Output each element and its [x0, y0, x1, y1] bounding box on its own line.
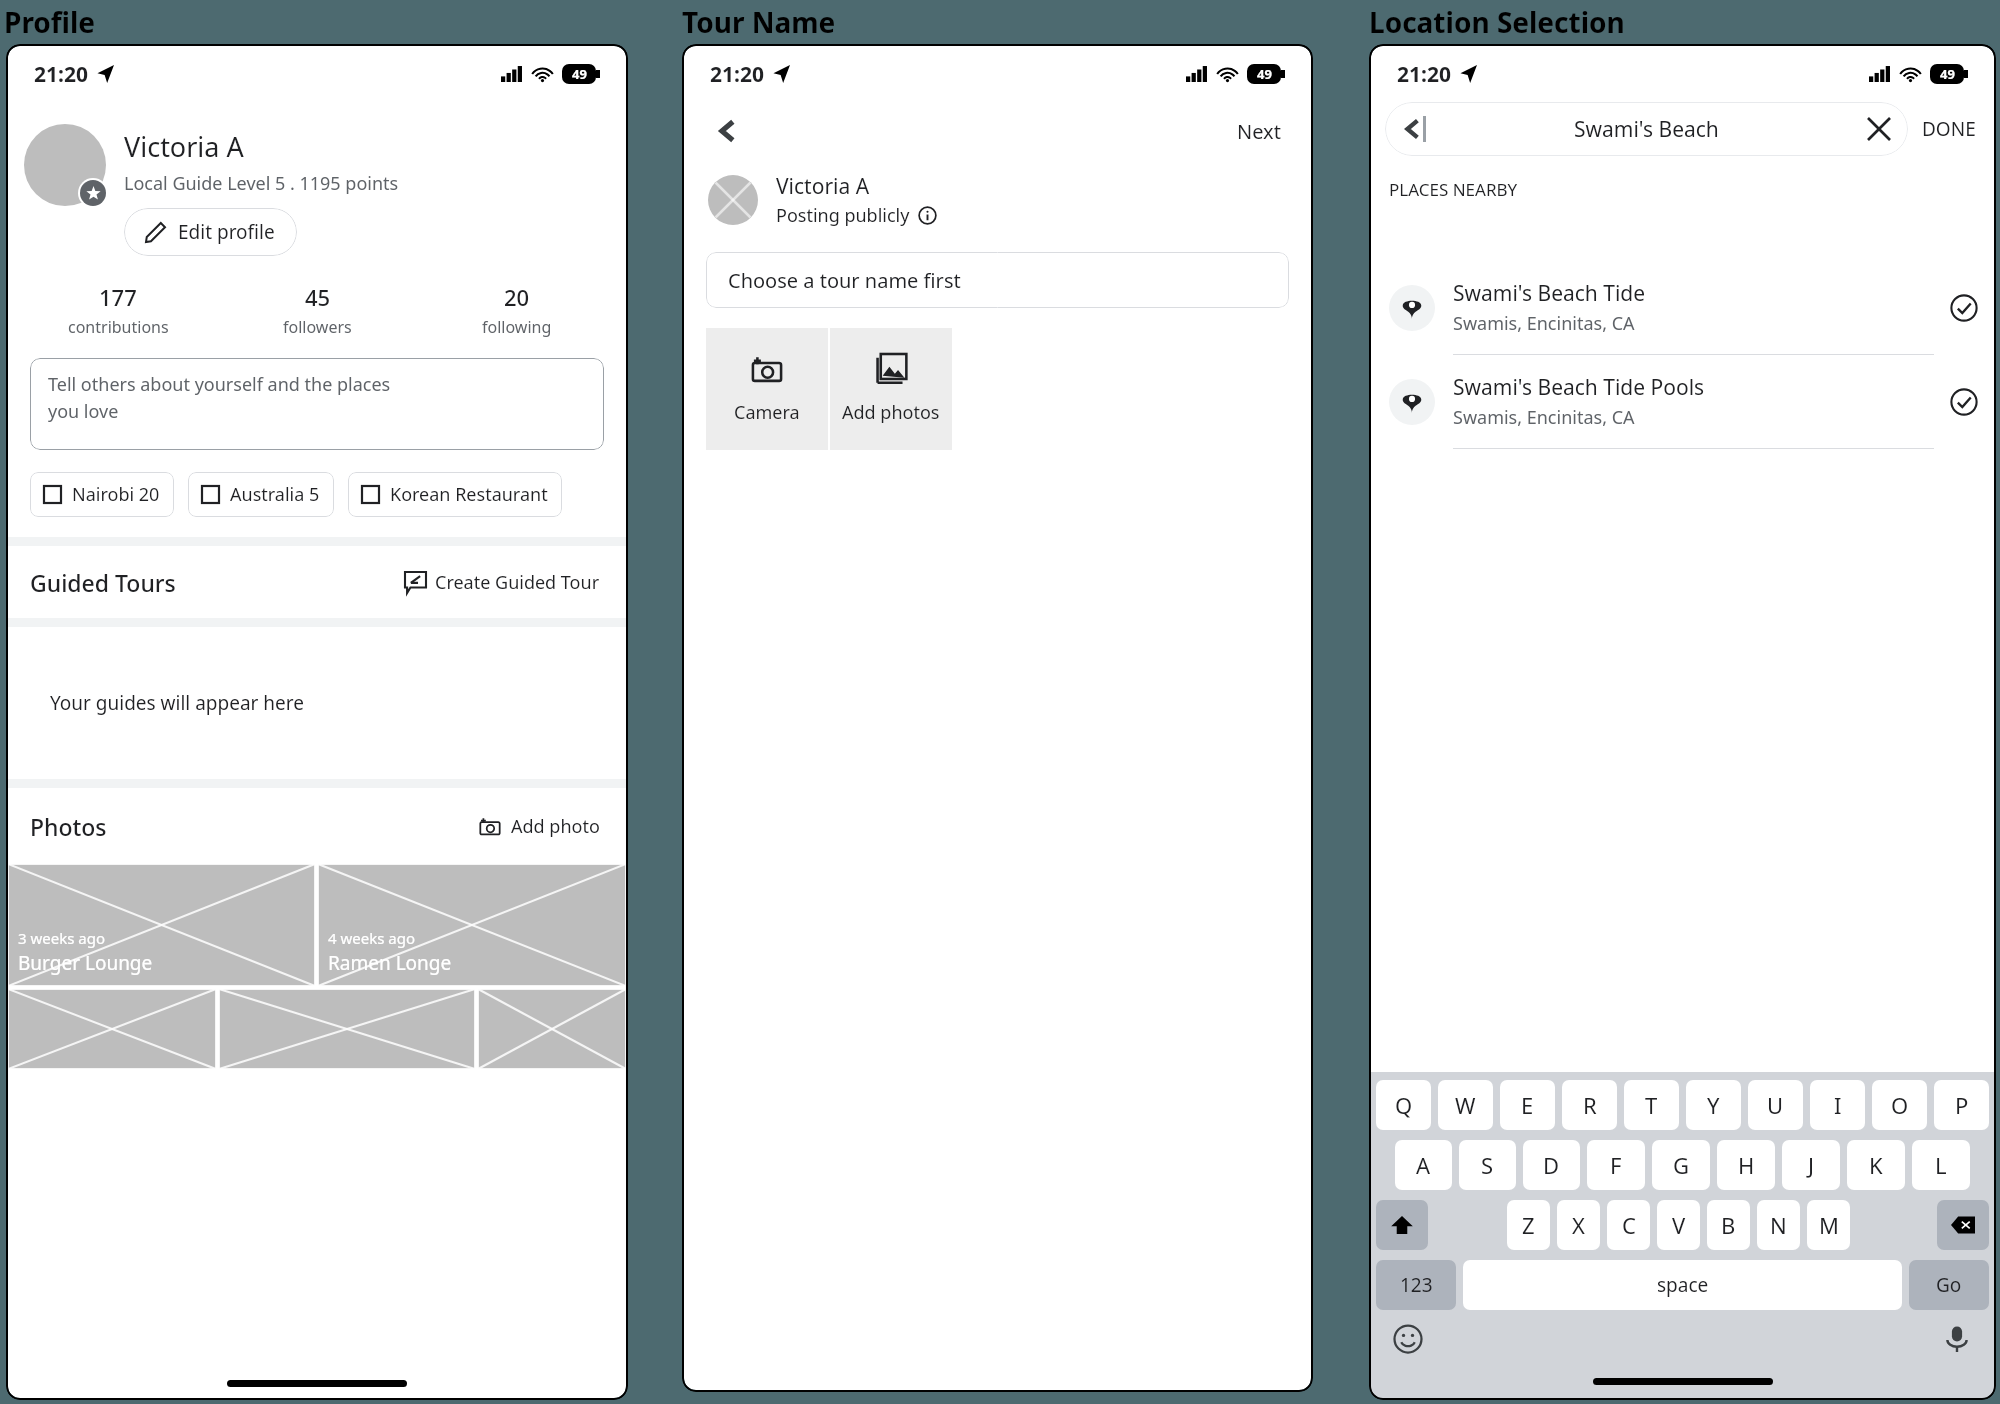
- staticText: 49: [1940, 65, 1955, 83]
- button[interactable]: Swami's Beach Tide Pools: [1371, 355, 1994, 449]
- staticText: Ramen Longe: [328, 950, 452, 976]
- button[interactable]: P: [1934, 1080, 1989, 1130]
- button[interactable]: Select Swami's Beach Tide Pools: [1934, 372, 1994, 432]
- staticText: Add photos: [842, 400, 940, 425]
- button[interactable]: Clear: [1868, 118, 1890, 140]
- staticText: 49: [572, 65, 587, 83]
- staticText: Q: [1395, 1090, 1413, 1120]
- button[interactable]: C: [1607, 1200, 1650, 1250]
- staticText: E: [1521, 1090, 1534, 1120]
- staticText: Z: [1522, 1210, 1535, 1240]
- button[interactable]: M: [1807, 1200, 1850, 1250]
- button[interactable]: Back: [708, 111, 748, 151]
- button[interactable]: Add photo: [475, 810, 604, 843]
- button[interactable]: A: [1395, 1140, 1452, 1190]
- button[interactable]: Korean Restaurant: [348, 472, 562, 517]
- button[interactable]: J: [1782, 1140, 1840, 1190]
- button[interactable]: Dictate: [1942, 1324, 1972, 1354]
- button[interactable]: B: [1707, 1200, 1750, 1250]
- button[interactable]: X: [1557, 1200, 1600, 1250]
- button[interactable]: W: [1438, 1080, 1493, 1130]
- button[interactable]: Back: [1385, 102, 1908, 156]
- staticText: Your guides will appear here: [50, 690, 305, 716]
- staticText: Next: [1237, 118, 1281, 145]
- button[interactable]: DONE: [1918, 112, 1980, 146]
- button[interactable]: Swami's Beach Tide: [1371, 261, 1994, 355]
- staticText: S: [1481, 1150, 1494, 1180]
- button[interactable]: Choose a tour name first: [706, 252, 1289, 308]
- staticText: Camera: [734, 400, 800, 425]
- button[interactable]: Add photos: [830, 328, 952, 450]
- button[interactable]: G: [1652, 1140, 1710, 1190]
- staticText: Swamis, Encinitas, CA: [1453, 405, 1635, 430]
- button[interactable]: Next: [1231, 112, 1287, 151]
- button[interactable]: Shift: [1376, 1200, 1428, 1250]
- button[interactable]: space: [1463, 1260, 1902, 1310]
- button[interactable]: 4 weeks ago: [318, 864, 626, 986]
- button[interactable]: K: [1847, 1140, 1905, 1190]
- staticText: Local Guide Level 5 . 1195 points: [124, 171, 399, 196]
- button[interactable]: S: [1459, 1140, 1516, 1190]
- staticText: I: [1834, 1090, 1842, 1120]
- other: Back: [1403, 119, 1423, 139]
- staticText: O: [1891, 1090, 1909, 1120]
- button[interactable]: F: [1587, 1140, 1645, 1190]
- button[interactable]: U: [1748, 1080, 1803, 1130]
- button[interactable]: [8, 989, 216, 1069]
- staticText: PLACES NEARBY: [1389, 178, 1518, 201]
- button[interactable]: 45: [218, 282, 417, 338]
- staticText: Victoria A: [124, 128, 244, 165]
- button[interactable]: I: [1810, 1080, 1865, 1130]
- button[interactable]: D: [1523, 1140, 1580, 1190]
- button[interactable]: 123: [1376, 1260, 1456, 1310]
- staticText: following: [482, 316, 552, 338]
- button[interactable]: Edit profile: [124, 208, 297, 256]
- staticText: Victoria A: [776, 172, 870, 201]
- button[interactable]: [219, 989, 475, 1069]
- staticText: Tour Name: [682, 3, 836, 41]
- staticText: W: [1455, 1090, 1476, 1120]
- button[interactable]: V: [1657, 1200, 1700, 1250]
- button[interactable]: T: [1624, 1080, 1679, 1130]
- staticText: N: [1770, 1210, 1787, 1240]
- staticText: Photos: [30, 811, 107, 842]
- staticText: Nairobi 20: [72, 482, 160, 507]
- button[interactable]: H: [1717, 1140, 1775, 1190]
- button[interactable]: Nairobi 20: [30, 472, 174, 517]
- button[interactable]: Backspace: [1937, 1200, 1989, 1250]
- staticText: K: [1869, 1150, 1883, 1180]
- button[interactable]: Australia 5: [188, 472, 334, 517]
- staticText: 20: [504, 282, 530, 312]
- button[interactable]: Q: [1376, 1080, 1431, 1130]
- staticText: Burger Lounge: [18, 950, 153, 976]
- staticText: H: [1738, 1150, 1755, 1180]
- button[interactable]: 177: [18, 282, 218, 338]
- button[interactable]: Tell others about yourself and the place…: [30, 358, 604, 450]
- button[interactable]: N: [1757, 1200, 1800, 1250]
- button[interactable]: Go: [1909, 1260, 1989, 1310]
- button[interactable]: R: [1562, 1080, 1617, 1130]
- staticText: 4 weeks ago: [328, 928, 416, 948]
- button[interactable]: L: [1912, 1140, 1970, 1190]
- staticText: 21:20: [1397, 60, 1451, 89]
- staticText: Location Selection: [1369, 3, 1625, 41]
- staticText: 45: [305, 282, 331, 312]
- staticText: space: [1657, 1272, 1709, 1298]
- staticText: Swami's Beach Tide: [1453, 279, 1646, 308]
- staticText: Profile: [4, 3, 96, 41]
- button[interactable]: Emoji: [1393, 1324, 1423, 1354]
- button[interactable]: Y: [1686, 1080, 1741, 1130]
- staticText: Go: [1936, 1272, 1962, 1298]
- button[interactable]: 20: [417, 282, 616, 338]
- button[interactable]: Camera: [706, 328, 828, 450]
- button[interactable]: Create Guided Tour: [401, 566, 604, 599]
- button[interactable]: Z: [1507, 1200, 1550, 1250]
- staticText: 177: [99, 282, 137, 312]
- button[interactable]: O: [1872, 1080, 1927, 1130]
- button[interactable]: E: [1500, 1080, 1555, 1130]
- button[interactable]: Select Swami's Beach Tide: [1934, 278, 1994, 338]
- staticText: followers: [283, 316, 352, 338]
- button[interactable]: [478, 989, 626, 1069]
- button[interactable]: 3 weeks ago: [8, 864, 315, 986]
- staticText: B: [1721, 1210, 1736, 1240]
